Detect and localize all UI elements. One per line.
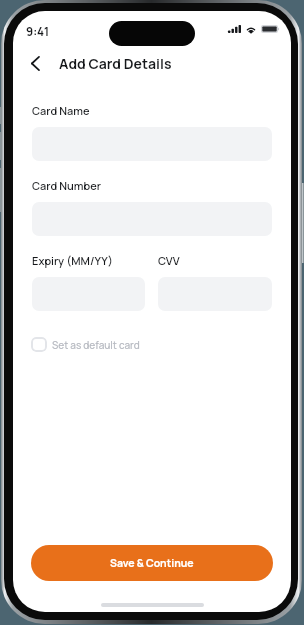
staticText: Save & Continue <box>110 556 194 570</box>
staticText: Set as default card <box>52 338 140 352</box>
staticText: Card Number <box>32 178 102 193</box>
button[interactable]: Save & Continue <box>31 545 273 581</box>
button[interactable]: Back <box>25 53 45 73</box>
staticText: Add Card Details <box>59 54 172 73</box>
button[interactable]: Set as default card <box>31 337 140 352</box>
staticText: Expiry (MM/YY) <box>32 253 113 268</box>
staticText: CVV <box>158 253 180 268</box>
staticText: Card Name <box>32 103 90 118</box>
staticText: 9:41 <box>26 24 50 40</box>
